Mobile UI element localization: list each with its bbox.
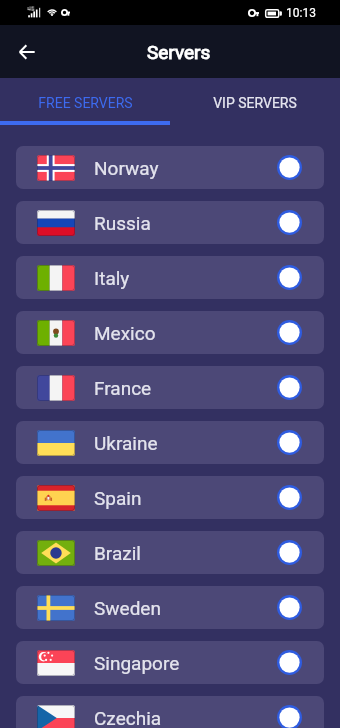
staticText: VIP SERVERS xyxy=(213,95,297,111)
button[interactable]: Russia xyxy=(16,201,324,244)
button[interactable]: Spain xyxy=(16,476,324,519)
button[interactable]: Singapore xyxy=(16,641,324,684)
staticText: Servers xyxy=(147,41,211,63)
button[interactable]: Mexico xyxy=(16,311,324,354)
staticText: Mexico xyxy=(94,322,156,344)
staticText: Czechia xyxy=(94,707,162,728)
button[interactable]: Brazil xyxy=(16,531,324,574)
button[interactable]: FREE SERVERS xyxy=(0,78,170,122)
button[interactable]: Sweden xyxy=(16,586,324,629)
staticText: Ukraine xyxy=(94,432,158,454)
button[interactable]: France xyxy=(16,366,324,409)
staticText: Singapore xyxy=(94,652,180,674)
staticText: Spain xyxy=(94,487,142,509)
staticText: Russia xyxy=(94,212,151,234)
staticText: 10:13 xyxy=(286,6,316,20)
button[interactable]: Norway xyxy=(16,146,324,189)
staticText: Italy xyxy=(94,267,130,289)
button[interactable]: Czechia xyxy=(16,696,324,728)
staticText: FREE SERVERS xyxy=(38,95,133,111)
staticText: Norway xyxy=(94,157,159,179)
button[interactable]: Back xyxy=(9,34,45,70)
staticText: France xyxy=(94,377,152,399)
button[interactable]: Italy xyxy=(16,256,324,299)
staticText: Brazil xyxy=(94,542,141,564)
button[interactable]: VIP SERVERS xyxy=(170,78,340,122)
staticText: Sweden xyxy=(94,597,161,619)
button[interactable]: Ukraine xyxy=(16,421,324,464)
